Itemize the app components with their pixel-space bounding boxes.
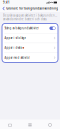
staticText: Appar i viloläge [4,36,26,40]
button[interactable]: Stäng av bakgrundsaktivitet [2,23,58,33]
button[interactable]: Tillbaka [2,5,6,12]
button[interactable]: Batteri [0,119,20,129]
staticText: Appar i dvala [4,46,21,50]
button[interactable]: Appar med aktivitet [2,53,58,62]
button[interactable]: Appar [20,119,40,129]
staticText: Stäng av bakgrundsaktivitet [4,26,39,30]
staticText: Begränsa appars aktivitet i bakgrunden f… [3,14,57,17]
button[interactable]: Inställningar [40,119,60,129]
staticText: 9:41 [3,1,10,4]
staticText: Appar med aktivitet [4,56,30,59]
staticText: använda mindre batteri och data. [3,17,47,21]
staticText: Grönare för bakgrundsanvändning [6,7,58,10]
button[interactable]: Appar i dvala [2,43,58,53]
button[interactable]: Appar i viloläge [2,33,58,43]
